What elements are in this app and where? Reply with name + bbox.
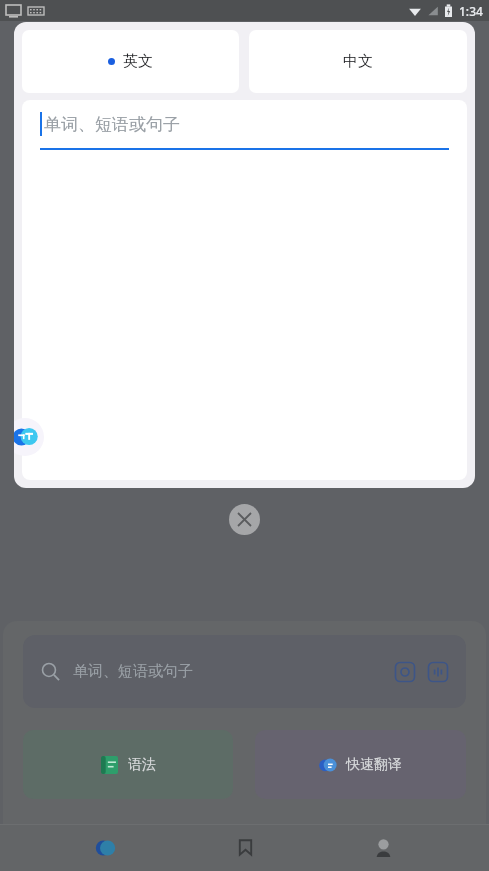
button[interactable]: Translate bbox=[74, 824, 138, 871]
staticText: 中文 bbox=[343, 52, 373, 71]
button[interactable]: 快速翻译 bbox=[255, 730, 466, 799]
button[interactable]: Camera translate bbox=[395, 662, 415, 682]
staticText: 单词、短语或句子 bbox=[44, 114, 180, 135]
button[interactable]: 单词、短语或句子 bbox=[23, 635, 466, 708]
button[interactable]: 语法 bbox=[23, 730, 233, 799]
button[interactable]: 英文 bbox=[22, 30, 239, 93]
button[interactable]: Voice translate bbox=[428, 662, 448, 682]
button[interactable]: Account bbox=[351, 824, 415, 871]
button[interactable]: Saved bbox=[213, 824, 277, 871]
button[interactable]: 中文 bbox=[249, 30, 467, 93]
staticText: 1:34 bbox=[459, 3, 483, 19]
staticText: 语法 bbox=[128, 756, 156, 774]
staticText: 单词、短语或句子 bbox=[73, 662, 193, 681]
button[interactable]: Close bbox=[229, 504, 260, 535]
staticText: 快速翻译 bbox=[346, 756, 402, 774]
button[interactable]: Google Translate bbox=[14, 418, 44, 456]
staticText: 英文 bbox=[123, 52, 153, 71]
button[interactable]: 单词、短语或句子 bbox=[22, 100, 467, 148]
